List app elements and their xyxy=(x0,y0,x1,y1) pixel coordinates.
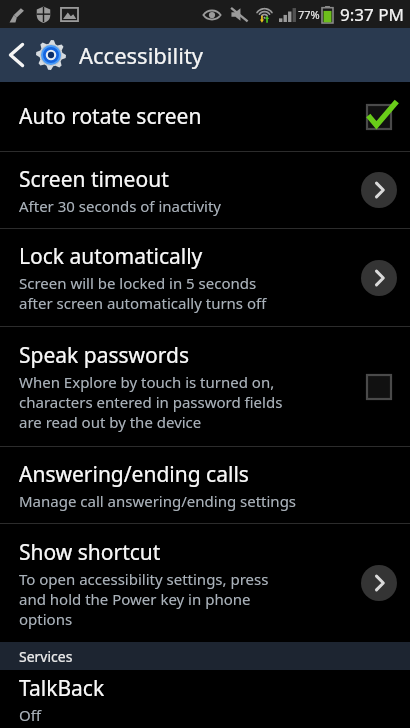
button[interactable]: Auto rotate screen xyxy=(0,82,410,151)
button[interactable]: Lock automatically xyxy=(0,229,410,326)
staticText: Speak passwords xyxy=(19,341,189,370)
button[interactable]: Open xyxy=(361,565,397,601)
staticText: Off xyxy=(19,705,42,725)
staticText: Answering/ending calls xyxy=(19,460,249,489)
staticText: 77% xyxy=(298,7,320,22)
staticText: Services xyxy=(19,647,73,666)
button[interactable]: Unchecked xyxy=(359,367,399,407)
button[interactable]: Checked xyxy=(359,97,399,137)
button[interactable]: Answering/ending calls xyxy=(0,447,410,523)
button[interactable]: Speak passwords xyxy=(0,327,410,446)
staticText: When Explore by touch is turned on, char… xyxy=(19,372,283,432)
staticText: Screen timeout xyxy=(19,165,169,194)
button[interactable]: Screen timeout xyxy=(0,152,410,228)
staticText: After 30 seconds of inactivity xyxy=(19,196,222,216)
staticText: Accessibility xyxy=(79,40,204,70)
button[interactable]: TalkBack xyxy=(0,670,410,728)
staticText: Auto rotate screen xyxy=(19,102,202,131)
button[interactable]: Open xyxy=(361,260,397,296)
staticText: Screen will be locked in 5 seconds after… xyxy=(19,273,267,313)
staticText: Manage call answering/ending settings xyxy=(19,491,297,511)
button[interactable]: Show shortcut xyxy=(0,524,410,642)
staticText: TalkBack xyxy=(19,674,105,703)
staticText: To open accessibility settings, press an… xyxy=(19,569,269,629)
staticText: Show shortcut xyxy=(19,538,161,567)
button[interactable]: Open xyxy=(361,172,397,208)
button[interactable]: Back xyxy=(0,28,32,82)
staticText: 9:37 PM xyxy=(340,3,404,26)
staticText: Lock automatically xyxy=(19,242,203,271)
